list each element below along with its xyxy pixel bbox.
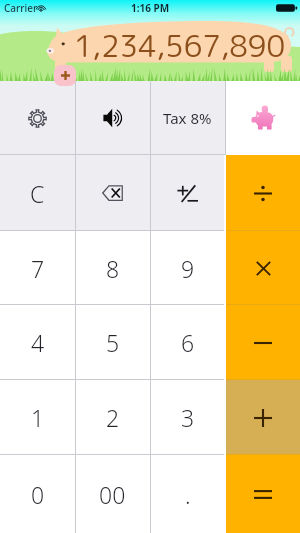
staticText: 1: [31, 402, 45, 433]
button[interactable]: Subtract: [226, 305, 300, 380]
staticText: .: [185, 479, 191, 510]
button[interactable]: Divide: [226, 155, 300, 231]
button[interactable]: 6: [150, 305, 225, 380]
button[interactable]: 4: [0, 305, 75, 380]
staticText: 4: [31, 327, 45, 358]
button[interactable]: C: [0, 155, 75, 231]
button[interactable]: Equals: [226, 455, 300, 533]
button[interactable]: Plus minus: [150, 155, 225, 231]
staticText: 9: [181, 253, 195, 284]
staticText: C: [30, 178, 45, 209]
button[interactable]: Add: [226, 380, 300, 455]
button[interactable]: Piggy Bank: [225, 81, 300, 155]
button[interactable]: 3: [150, 380, 225, 455]
staticText: 00: [99, 479, 126, 510]
staticText: Carrier: [4, 1, 38, 15]
staticText: 6: [181, 327, 195, 358]
button[interactable]: 2: [75, 380, 150, 455]
staticText: Tax 8%: [163, 108, 212, 128]
staticText: 1,234,567,890: [74, 25, 286, 67]
button[interactable]: 8: [75, 231, 150, 305]
button[interactable]: 0: [0, 455, 75, 533]
button[interactable]: 5: [75, 305, 150, 380]
staticText: 3: [181, 402, 195, 433]
button[interactable]: Sound: [75, 81, 150, 155]
button[interactable]: 00: [75, 455, 150, 533]
button[interactable]: Settings: [0, 81, 75, 155]
staticText: 5: [106, 327, 120, 358]
button[interactable]: 9: [150, 231, 225, 305]
button[interactable]: 7: [0, 231, 75, 305]
button[interactable]: 1: [0, 380, 75, 455]
staticText: 1:16 PM: [131, 1, 170, 15]
staticText: 2: [106, 402, 120, 433]
button[interactable]: Multiply: [226, 231, 300, 305]
button[interactable]: Backspace: [75, 155, 150, 231]
staticText: 7: [31, 253, 45, 284]
button[interactable]: Add: [54, 65, 76, 86]
staticText: 0: [31, 479, 45, 510]
button[interactable]: Tax 8%: [150, 81, 225, 155]
staticText: 8: [106, 253, 120, 284]
button[interactable]: .: [150, 455, 225, 533]
